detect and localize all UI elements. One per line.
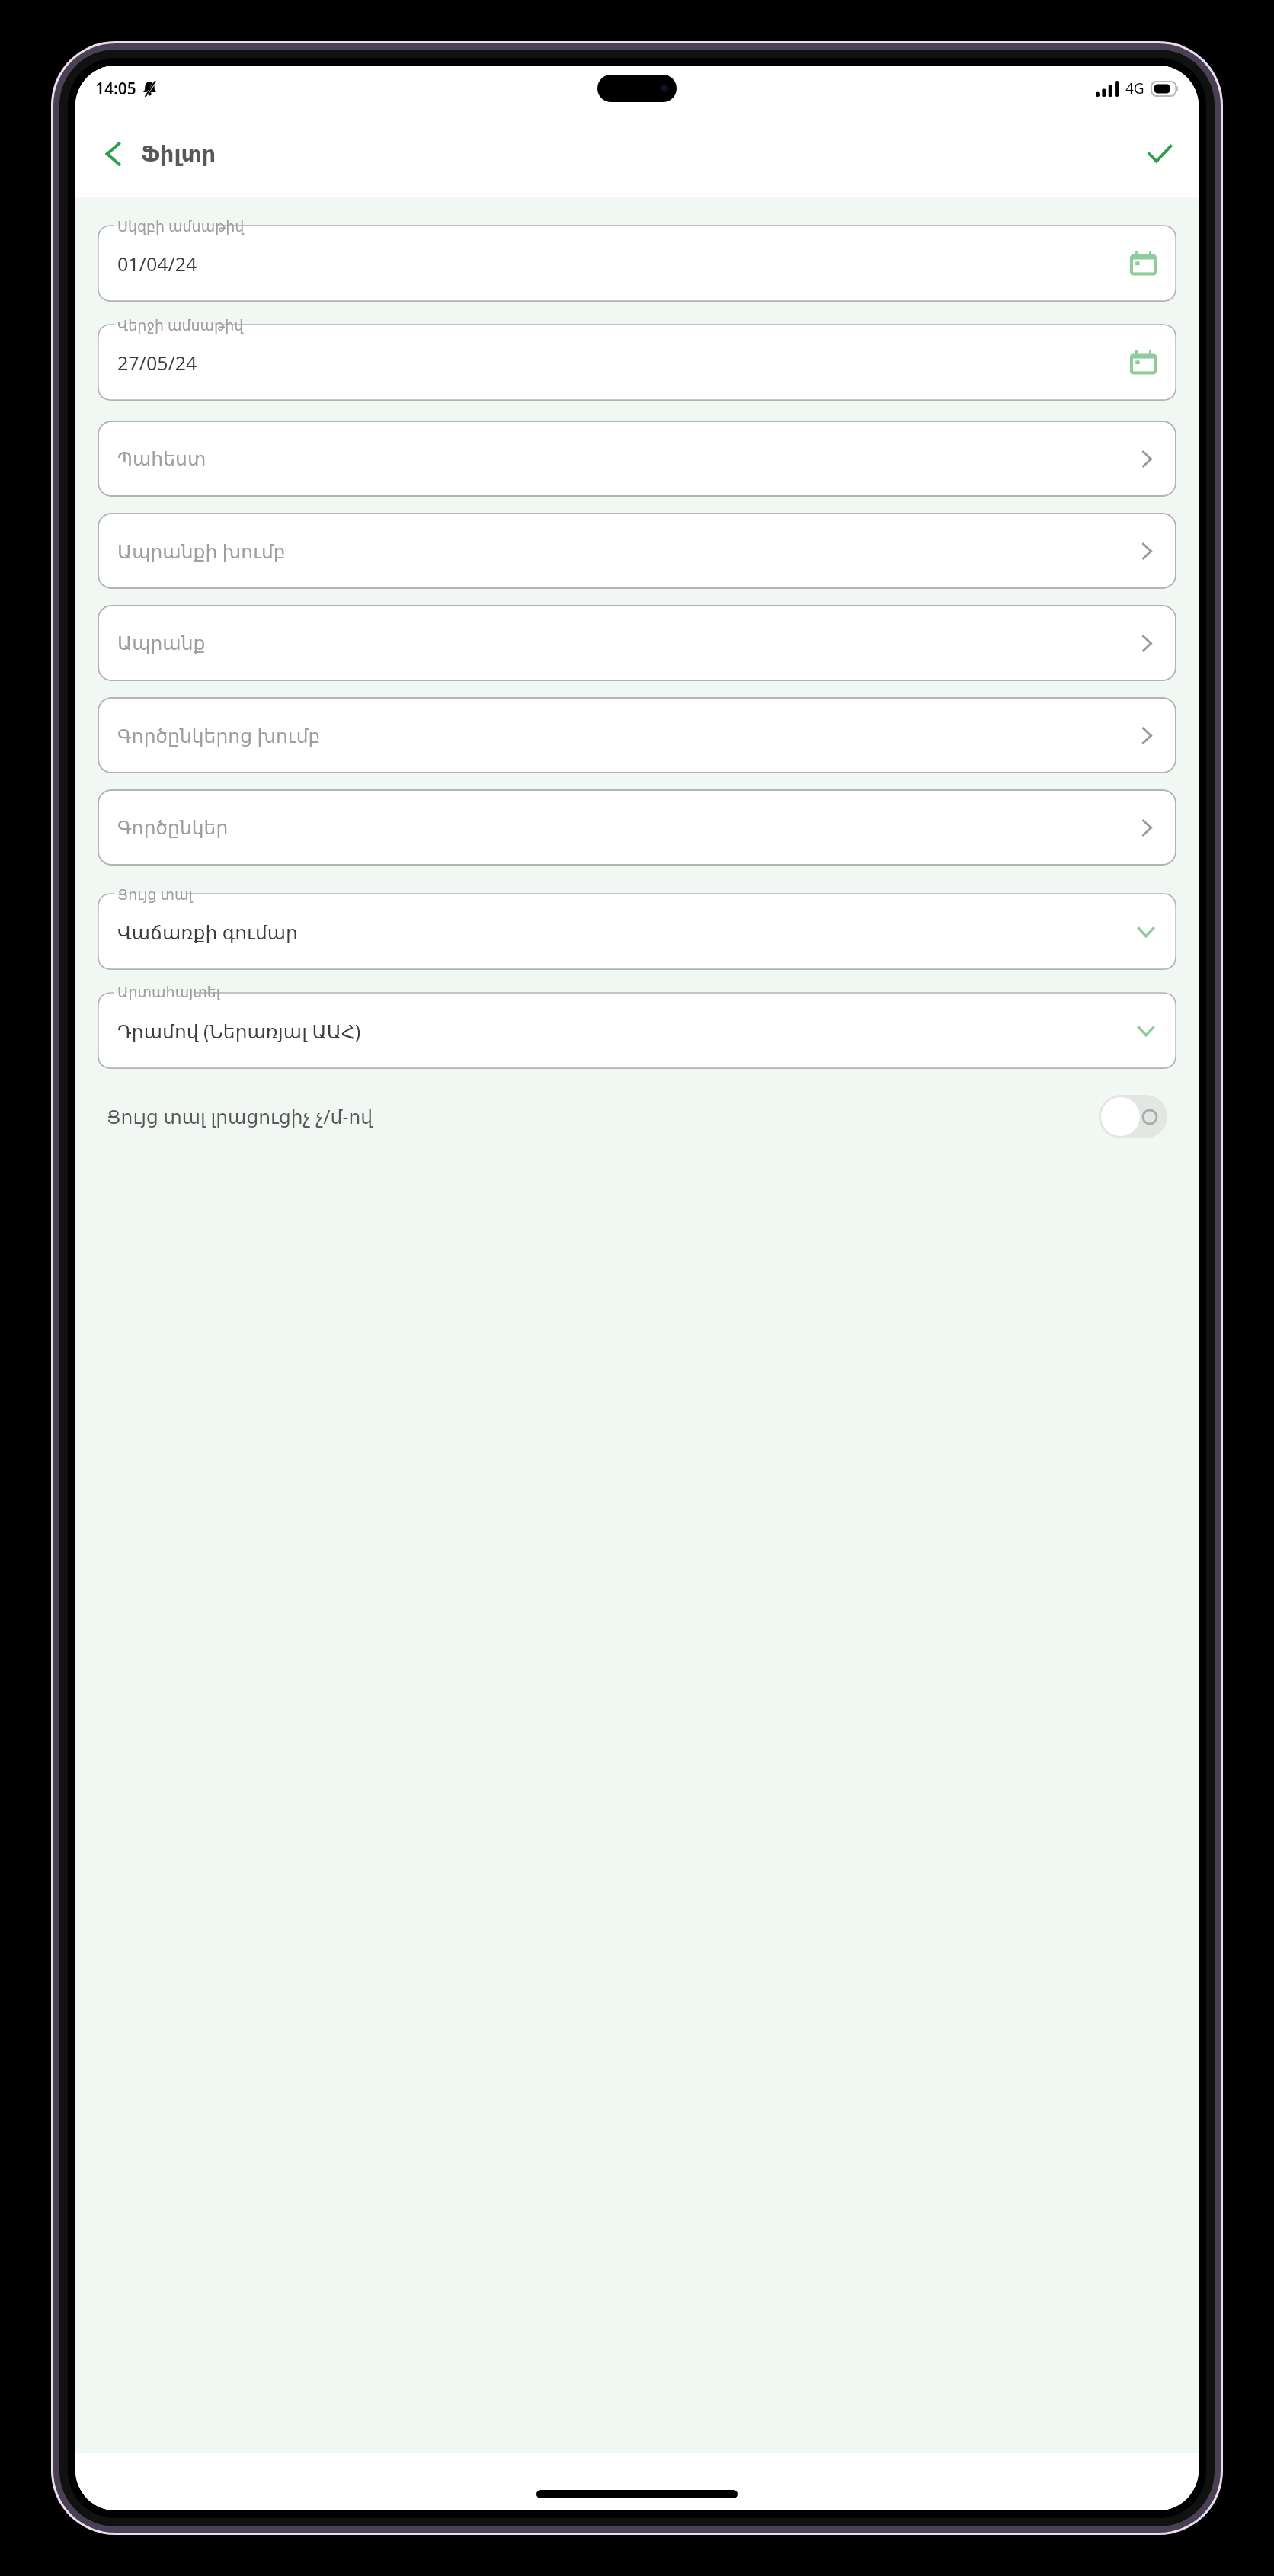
button[interactable]: Գործընկեր: [98, 789, 1176, 866]
staticText: Ապրանքի խումբ: [117, 538, 286, 564]
button[interactable]: Ապրանք: [98, 605, 1176, 681]
button[interactable]: Ցույց տալ: [98, 885, 1176, 970]
button[interactable]: Գործընկերոց խումբ: [98, 697, 1176, 773]
staticText: Սկզբի ամսաթիվ: [117, 216, 245, 236]
button[interactable]: Վերջի ամսաթիվ: [98, 315, 1176, 401]
staticText: Ապրանք: [117, 632, 206, 654]
button[interactable]: Արտահայտել: [98, 984, 1176, 1069]
staticText: 4G: [1125, 78, 1144, 98]
staticText: Գործընկեր: [117, 817, 229, 839]
staticText: 27/05/24: [117, 350, 197, 376]
staticText: Ցույց տալ: [117, 885, 193, 904]
staticText: Վաճառքի գումար: [117, 919, 298, 945]
staticText: Ֆիլտր: [141, 141, 216, 167]
button[interactable]: Սկզբի ամսաթիվ: [98, 216, 1176, 302]
staticText: Գործընկերոց խումբ: [117, 722, 321, 748]
button[interactable]: Ցույց տալ լրացուցիչ չ/մ-ով: [98, 1077, 1176, 1156]
staticText: Վերջի ամսաթիվ: [117, 315, 244, 335]
staticText: Պահեստ: [117, 448, 206, 470]
button[interactable]: Back: [89, 130, 138, 178]
button[interactable]: Apply filter: [1136, 130, 1183, 178]
staticText: Դրամով (Ներառյալ ԱԱՀ): [117, 1018, 361, 1044]
button[interactable]: Պահեստ: [98, 421, 1176, 497]
staticText: 14:05: [95, 78, 136, 100]
staticText: Արտահայտել: [117, 984, 221, 1000]
staticText: Ցույց տալ լրացուցիչ չ/մ-ով: [107, 1103, 373, 1129]
staticText: 01/04/24: [117, 251, 197, 277]
button[interactable]: Ապրանքի խումբ: [98, 513, 1176, 589]
